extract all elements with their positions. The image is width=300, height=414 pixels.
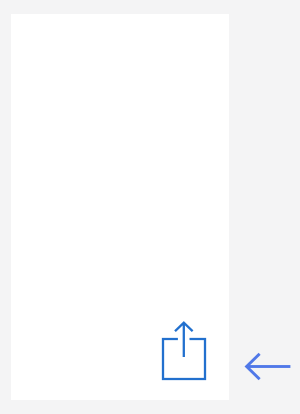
button[interactable]: Share <box>160 318 208 382</box>
button[interactable]: Back <box>244 351 292 381</box>
